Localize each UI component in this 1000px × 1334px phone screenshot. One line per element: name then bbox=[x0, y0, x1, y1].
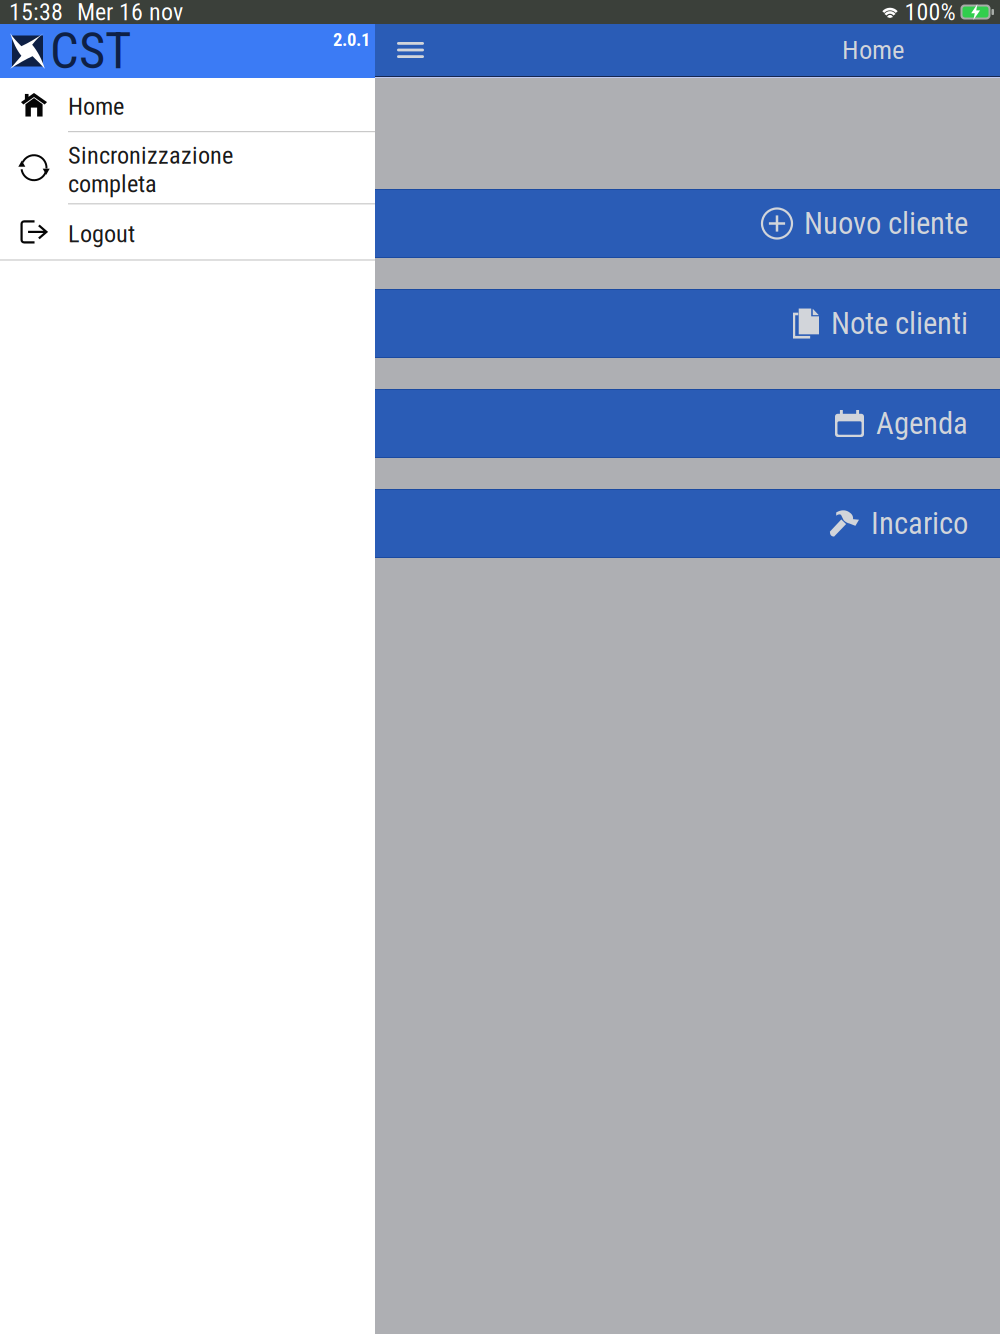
staticText: Nuovo cliente bbox=[804, 205, 968, 241]
staticText: 100% bbox=[904, 0, 955, 26]
button[interactable]: Menu bbox=[375, 24, 438, 76]
button[interactable]: Sincronizzazione completa bbox=[0, 132, 375, 203]
staticText: Sincronizzazione completa bbox=[68, 141, 233, 198]
staticText: Home bbox=[842, 34, 905, 66]
staticText: Logout bbox=[68, 220, 135, 248]
button[interactable]: Incarico bbox=[375, 489, 1000, 558]
staticText: 2.0.1 bbox=[333, 29, 370, 50]
button[interactable]: Note clienti bbox=[375, 289, 1000, 358]
staticText: Incarico bbox=[871, 505, 968, 541]
staticText: Note clienti bbox=[831, 305, 968, 341]
staticText: 15:38 bbox=[9, 0, 63, 26]
button[interactable]: Logout bbox=[0, 204, 375, 259]
staticText: Home bbox=[68, 92, 124, 121]
staticText: CST bbox=[50, 21, 131, 81]
button[interactable]: Agenda bbox=[375, 389, 1000, 458]
button[interactable]: Home bbox=[0, 78, 375, 131]
staticText: Mer 16 nov bbox=[77, 0, 183, 26]
staticText: Agenda bbox=[876, 405, 968, 441]
button[interactable]: Nuovo cliente bbox=[375, 189, 1000, 258]
